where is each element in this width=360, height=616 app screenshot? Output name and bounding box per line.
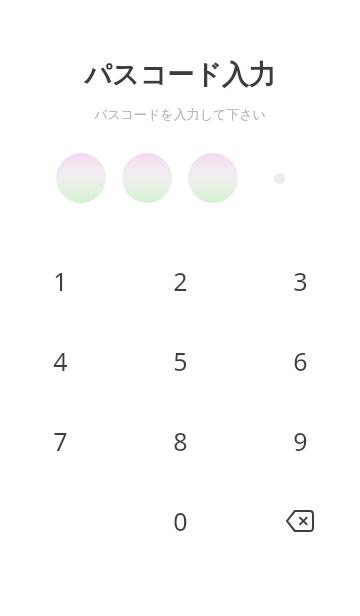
button[interactable]: 3 [240,241,360,321]
button[interactable]: 5 [120,321,240,401]
button[interactable]: 9 [240,401,360,481]
staticText: 6 [293,344,308,378]
button[interactable]: 0 [120,481,240,561]
staticText: 4 [53,344,68,378]
staticText: 5 [173,344,188,378]
button[interactable]: 2 [120,241,240,321]
staticText: パスコードを入力して下さい [94,106,266,122]
staticText: 9 [293,424,308,458]
button[interactable]: 1 [0,241,120,321]
staticText: 7 [53,424,68,458]
staticText: 3 [293,264,308,298]
button[interactable]: Backspace [240,481,360,561]
staticText: 0 [173,504,188,538]
staticText: 8 [173,424,188,458]
button[interactable]: 4 [0,321,120,401]
button[interactable]: 6 [240,321,360,401]
staticText: パスコード入力 [84,58,276,92]
staticText: 1 [53,264,68,298]
button[interactable]: 7 [0,401,120,481]
button[interactable]: 8 [120,401,240,481]
staticText: 2 [173,264,188,298]
